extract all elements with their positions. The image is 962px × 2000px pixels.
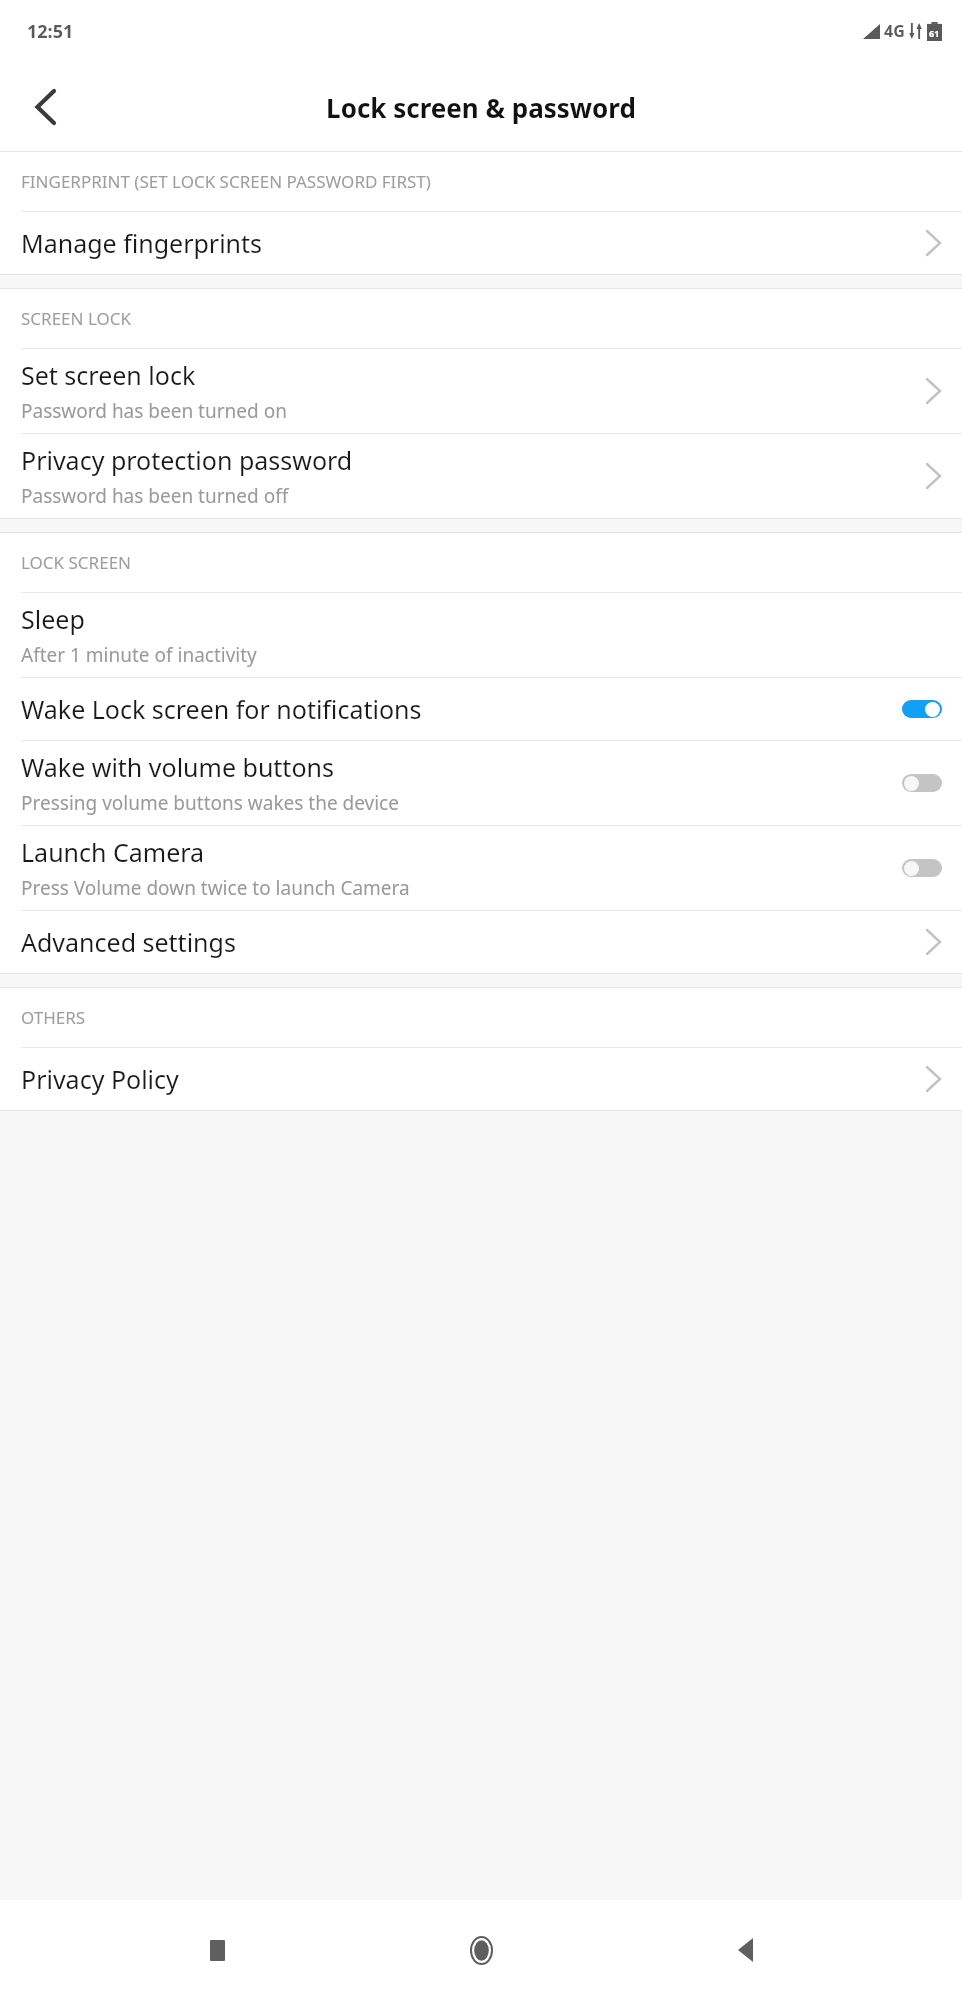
- staticText: Set screen lock: [21, 358, 196, 392]
- staticText: After 1 minute of inactivity: [21, 642, 257, 668]
- staticText: Advanced settings: [21, 925, 236, 959]
- staticText: Pressing volume buttons wakes the device: [21, 790, 399, 816]
- button[interactable]: On: [902, 700, 942, 718]
- staticText: SCREEN LOCK: [21, 307, 132, 330]
- staticText: LOCK SCREEN: [21, 551, 132, 574]
- staticText: Press Volume down twice to launch Camera: [21, 875, 410, 901]
- staticText: Launch Camera: [21, 835, 205, 869]
- button[interactable]: Home: [452, 1921, 510, 1979]
- staticText: Password has been turned off: [21, 483, 289, 509]
- staticText: Privacy Policy: [21, 1062, 179, 1096]
- button[interactable]: Wake Lock screen for notifications: [0, 678, 962, 740]
- staticText: Wake Lock screen for notifications: [21, 692, 422, 726]
- button[interactable]: Sleep: [0, 593, 962, 677]
- staticText: FINGERPRINT (SET LOCK SCREEN PASSWORD FI…: [21, 170, 431, 193]
- staticText: 12:51: [27, 19, 74, 44]
- button[interactable]: Off: [902, 859, 942, 877]
- staticText: Lock screen & password: [326, 90, 636, 125]
- button[interactable]: Back: [14, 76, 76, 138]
- button[interactable]: Privacy protection password: [0, 434, 962, 518]
- button[interactable]: Manage fingerprints: [0, 212, 962, 274]
- staticText: 4G: [884, 20, 905, 42]
- staticText: Wake with volume buttons: [21, 750, 334, 784]
- button[interactable]: Advanced settings: [0, 911, 962, 973]
- button[interactable]: Set screen lock: [0, 349, 962, 433]
- staticText: Sleep: [21, 602, 85, 636]
- staticText: Password has been turned on: [21, 398, 287, 424]
- staticText: Privacy protection password: [21, 443, 353, 477]
- staticText: Manage fingerprints: [21, 226, 263, 260]
- staticText: OTHERS: [21, 1006, 86, 1029]
- button[interactable]: Launch Camera: [0, 826, 962, 910]
- button[interactable]: Back: [716, 1921, 774, 1979]
- button[interactable]: Off: [902, 774, 942, 792]
- staticText: 61: [929, 27, 940, 39]
- button[interactable]: Privacy Policy: [0, 1048, 962, 1110]
- button[interactable]: Recent apps: [188, 1921, 246, 1979]
- button[interactable]: Wake with volume buttons: [0, 741, 962, 825]
